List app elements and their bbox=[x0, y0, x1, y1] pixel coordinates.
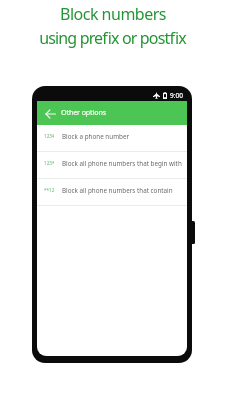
staticText: Block numbers bbox=[60, 3, 166, 25]
staticText: **123 bbox=[44, 187, 54, 193]
button[interactable]: Back bbox=[45, 108, 56, 119]
staticText: using prefix or postfix bbox=[39, 27, 186, 49]
button[interactable]: 123** bbox=[37, 152, 187, 178]
button[interactable]: 12345 bbox=[37, 125, 187, 151]
button[interactable]: Back bbox=[37, 101, 187, 125]
staticText: Block all phone numbers that contain bbox=[62, 186, 173, 195]
staticText: Other options bbox=[61, 107, 107, 117]
button[interactable]: **123 bbox=[37, 179, 187, 205]
staticText: Block all phone numbers that begin with bbox=[62, 159, 182, 168]
staticText: 9:00 bbox=[170, 91, 183, 100]
staticText: 12345 bbox=[44, 133, 54, 139]
staticText: Block a phone number bbox=[62, 132, 130, 141]
staticText: 123** bbox=[44, 160, 54, 166]
